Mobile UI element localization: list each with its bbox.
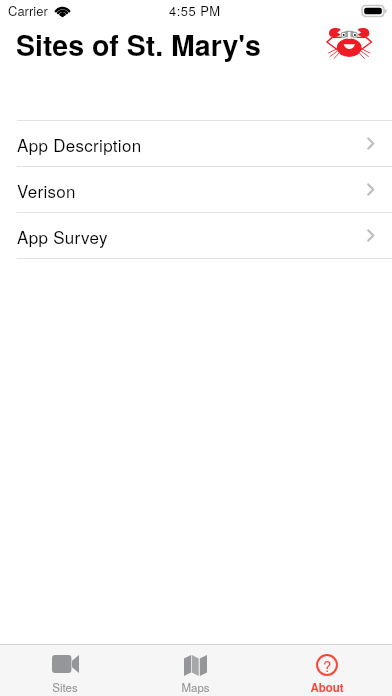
staticText: Verison: [17, 178, 76, 202]
button[interactable]: App Description: [0, 121, 392, 166]
staticText: Sites: [52, 679, 78, 695]
staticText: App Description: [17, 132, 142, 156]
staticText: 4:55 PM: [169, 1, 221, 20]
staticText: About: [310, 679, 344, 695]
button[interactable]: Maps: [130, 645, 261, 696]
button[interactable]: Sites: [0, 645, 130, 696]
staticText: App Survey: [17, 224, 108, 248]
staticText: Maps: [181, 679, 210, 695]
staticText: Carrier: [8, 1, 48, 20]
other: Crab logo: [326, 27, 370, 59]
button[interactable]: ?: [261, 645, 392, 696]
staticText: ?: [323, 655, 332, 676]
button[interactable]: App Survey: [0, 213, 392, 258]
staticText: Sites of St. Mary's: [16, 24, 261, 65]
button[interactable]: Verison: [0, 167, 392, 212]
